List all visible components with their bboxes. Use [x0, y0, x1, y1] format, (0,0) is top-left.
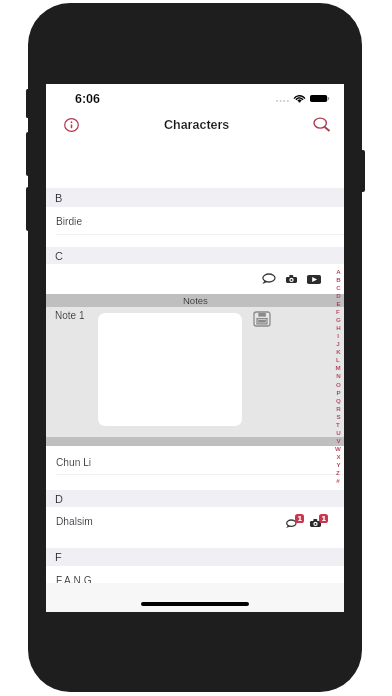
staticText: Characters: [164, 118, 230, 132]
staticText: Chun Li: [56, 457, 92, 468]
button[interactable]: Photos: [306, 512, 328, 530]
staticText: 6:06: [75, 92, 101, 106]
button[interactable]: Dhalsim: [46, 507, 344, 536]
staticText: Z: [336, 469, 340, 476]
staticText: C: [55, 250, 63, 262]
staticText: F.A.N.G: [56, 575, 92, 586]
staticText: O: [336, 381, 341, 388]
staticText: T: [336, 421, 340, 428]
staticText: N: [336, 372, 341, 379]
staticText: B: [336, 276, 341, 283]
staticText: P: [336, 389, 341, 396]
button[interactable]: A: [332, 268, 344, 484]
button[interactable]: Save note: [254, 312, 270, 326]
staticText: S: [336, 413, 341, 420]
button[interactable]: F.A.N.G: [46, 566, 344, 595]
staticText: Dhalsim: [56, 516, 93, 527]
staticText: G: [336, 316, 341, 323]
button[interactable]: Search: [308, 112, 336, 137]
staticText: 1: [298, 515, 302, 522]
staticText: C: [336, 284, 341, 291]
staticText: V: [336, 437, 341, 444]
staticText: U: [336, 429, 341, 436]
staticText: F: [55, 551, 62, 563]
button[interactable]: Photos: [282, 272, 300, 286]
staticText: H: [336, 324, 341, 331]
staticText: Note 1: [55, 310, 85, 321]
staticText: B: [55, 192, 63, 204]
staticText: E: [336, 300, 341, 307]
staticText: Y: [336, 461, 341, 468]
button[interactable]: Birdie: [46, 207, 344, 235]
staticText: F: [336, 308, 340, 315]
staticText: D: [55, 493, 63, 505]
staticText: X: [336, 453, 341, 460]
staticText: 1: [322, 515, 326, 522]
staticText: Birdie: [56, 216, 83, 227]
staticText: D: [336, 292, 341, 299]
staticText: I: [337, 332, 339, 339]
staticText: #: [336, 477, 340, 484]
staticText: L: [336, 356, 340, 363]
staticText: Notes: [183, 295, 208, 306]
staticText: Q: [336, 397, 341, 404]
button[interactable]: Chun Li: [46, 446, 344, 475]
staticText: W: [335, 445, 341, 452]
staticText: J: [336, 340, 340, 347]
staticText: R: [336, 405, 341, 412]
button[interactable]: Info: [57, 112, 85, 137]
staticText: K: [336, 348, 341, 355]
button[interactable]: Videos: [304, 272, 324, 287]
button[interactable]: Comments: [258, 271, 279, 287]
staticText: M: [335, 364, 341, 371]
button[interactable]: Comments: [282, 512, 304, 530]
staticText: A: [336, 268, 341, 275]
